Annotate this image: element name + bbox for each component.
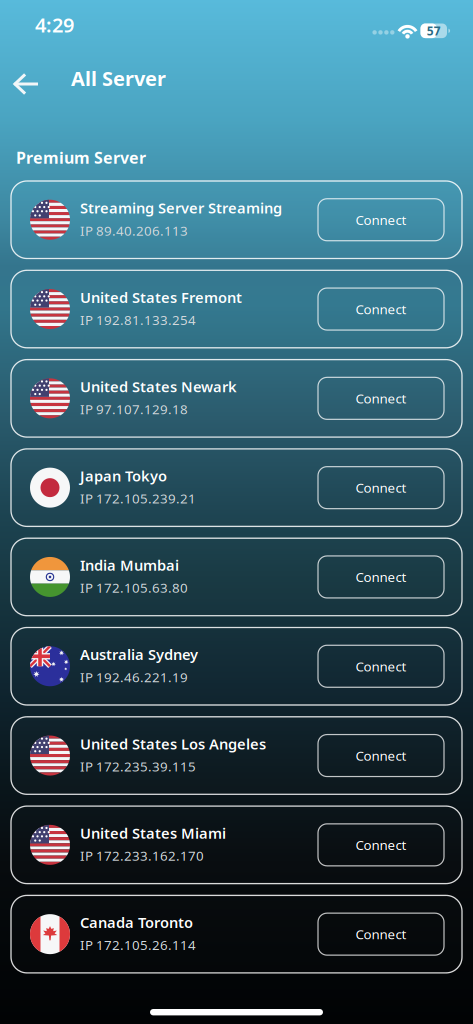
button[interactable]: Connect <box>318 199 444 241</box>
button[interactable]: Australia Sydney <box>11 627 462 705</box>
staticText: Connect <box>355 657 406 675</box>
button[interactable]: United States Fremont <box>11 270 462 348</box>
staticText: 4:29 <box>35 11 74 38</box>
staticText: Japan Tokyo <box>80 466 167 486</box>
staticText: IP 172.105.26.114 <box>80 936 196 954</box>
staticText: IP 172.235.39.115 <box>80 757 196 775</box>
staticText: Canada Toronto <box>80 913 193 932</box>
button[interactable] <box>12 72 40 96</box>
staticText: IP 192.46.221.19 <box>80 668 188 686</box>
staticText: IP 97.107.129.18 <box>80 400 188 418</box>
button[interactable]: Japan Tokyo <box>11 449 462 526</box>
button[interactable]: Connect <box>318 824 444 866</box>
staticText: Connect <box>355 479 406 496</box>
button[interactable]: United States Newark <box>11 360 462 437</box>
staticText: Connect <box>355 211 406 229</box>
button[interactable]: United States Los Angeles <box>11 717 462 794</box>
button[interactable]: Connect <box>318 913 444 955</box>
button[interactable]: Streaming Server Streaming <box>11 181 462 258</box>
staticText: Premium Server <box>16 147 146 168</box>
staticText: All Server <box>71 65 166 92</box>
button[interactable]: Connect <box>318 288 444 330</box>
staticText: IP 89.40.206.113 <box>80 222 188 239</box>
staticText: Connect <box>355 747 406 764</box>
staticText: IP 172.233.162.170 <box>80 847 204 864</box>
button[interactable]: Canada Toronto <box>11 895 462 973</box>
staticText: Streaming Server Streaming <box>80 198 282 218</box>
button[interactable]: Connect <box>318 734 444 776</box>
button[interactable]: India Mumbai <box>11 538 462 616</box>
staticText: Connect <box>355 300 406 318</box>
staticText: United States Los Angeles <box>80 734 266 753</box>
staticText: Connect <box>355 389 406 407</box>
staticText: Connect <box>355 925 406 943</box>
staticText: IP 172.105.63.80 <box>80 579 188 596</box>
button[interactable]: Connect <box>318 467 444 509</box>
staticText: United States Miami <box>80 823 226 843</box>
staticText: United States Fremont <box>80 287 242 307</box>
staticText: IP 172.105.239.21 <box>80 489 196 507</box>
button[interactable]: Connect <box>318 645 444 687</box>
staticText: IP 192.81.133.254 <box>80 311 196 329</box>
staticText: Connect <box>355 836 406 854</box>
staticText: Australia Sydney <box>80 645 198 664</box>
button[interactable]: Connect <box>318 377 444 419</box>
staticText: United States Newark <box>80 377 237 396</box>
staticText: Connect <box>355 568 406 586</box>
button[interactable]: United States Miami <box>11 806 462 884</box>
button[interactable]: Connect <box>318 556 444 598</box>
staticText: India Mumbai <box>80 555 179 575</box>
staticText: 57 <box>427 23 441 39</box>
